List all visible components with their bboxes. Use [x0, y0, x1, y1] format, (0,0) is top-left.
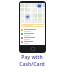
- button[interactable]: [20, 32, 45, 36]
- button[interactable]: [20, 40, 45, 44]
- staticText: Pay with: [21, 54, 43, 61]
- button[interactable]: [20, 28, 45, 32]
- staticText: Cash/Card: [19, 61, 45, 68]
- button[interactable]: Pay with: [0, 54, 64, 68]
- button[interactable]: Home: [31, 47, 35, 51]
- button[interactable]: [20, 36, 45, 40]
- button[interactable]: Home: [19, 1, 46, 53]
- button[interactable]: [21, 24, 44, 27]
